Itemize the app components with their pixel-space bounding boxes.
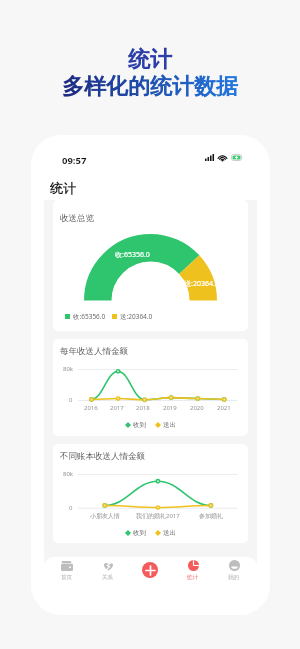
staticText: 0	[69, 504, 73, 512]
staticText: 送出	[163, 529, 176, 537]
button[interactable]: 统计	[177, 559, 209, 585]
button[interactable]: 首页	[51, 559, 83, 585]
staticText: 2019	[163, 404, 177, 412]
staticText: 小朋友人情	[90, 512, 120, 520]
staticText: 2016	[84, 404, 98, 412]
staticText: 2017	[110, 404, 124, 412]
staticText: 参加婚礼	[199, 512, 223, 520]
staticText: 09:57	[62, 154, 87, 167]
staticText: 统计	[187, 574, 199, 581]
button[interactable]: Add record	[142, 562, 158, 578]
button[interactable]: 我的	[218, 559, 250, 585]
staticText: 送:20364.0	[184, 279, 219, 289]
staticText: 2021	[217, 404, 231, 412]
staticText: 0	[69, 396, 73, 404]
button[interactable]: 关系	[92, 559, 124, 585]
staticText: 我们的婚礼2017	[136, 512, 180, 520]
staticText: 关系	[102, 574, 114, 581]
staticText: 我的	[228, 574, 240, 581]
staticText: 收到	[133, 529, 146, 537]
staticText: 不同账本收送人情金额	[60, 451, 145, 462]
staticText: 收到	[133, 421, 146, 429]
staticText: 收:65356.0	[115, 250, 150, 260]
staticText: 2018	[136, 404, 150, 412]
staticText: 多样化的统计数据	[62, 73, 238, 101]
staticText: 送:20364.0	[120, 312, 153, 321]
staticText: 统计	[128, 46, 172, 74]
staticText: 2020	[190, 404, 204, 412]
staticText: 统计	[50, 180, 76, 196]
staticText: 送出	[163, 421, 176, 429]
staticText: 每年收送人情金额	[60, 346, 128, 357]
staticText: 首页	[61, 574, 73, 581]
staticText: 收送总览	[60, 213, 94, 224]
staticText: 80k	[63, 365, 74, 373]
staticText: 80k	[63, 470, 74, 478]
staticText: 收:65356.0	[73, 312, 106, 321]
